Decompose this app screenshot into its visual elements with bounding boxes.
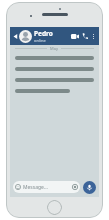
staticText: Pedro [34, 29, 53, 38]
button[interactable]: Call [80, 29, 90, 43]
button[interactable]: Profile photo [19, 30, 32, 43]
button[interactable]: Attach [72, 184, 78, 190]
button[interactable]: Message... [15, 181, 78, 193]
staticText: May [50, 46, 58, 51]
button[interactable] [15, 78, 94, 82]
button[interactable]: Back [12, 29, 19, 43]
staticText: online [34, 38, 46, 43]
button[interactable]: Video call [69, 29, 80, 43]
button[interactable] [15, 67, 94, 71]
staticText: Message... [23, 184, 72, 191]
button[interactable]: More options [90, 29, 97, 43]
button[interactable]: Pedro [34, 29, 69, 43]
button[interactable] [15, 89, 70, 93]
button[interactable]: Record voice message [83, 181, 96, 194]
button[interactable] [15, 56, 94, 60]
button[interactable]: Home [47, 200, 62, 215]
